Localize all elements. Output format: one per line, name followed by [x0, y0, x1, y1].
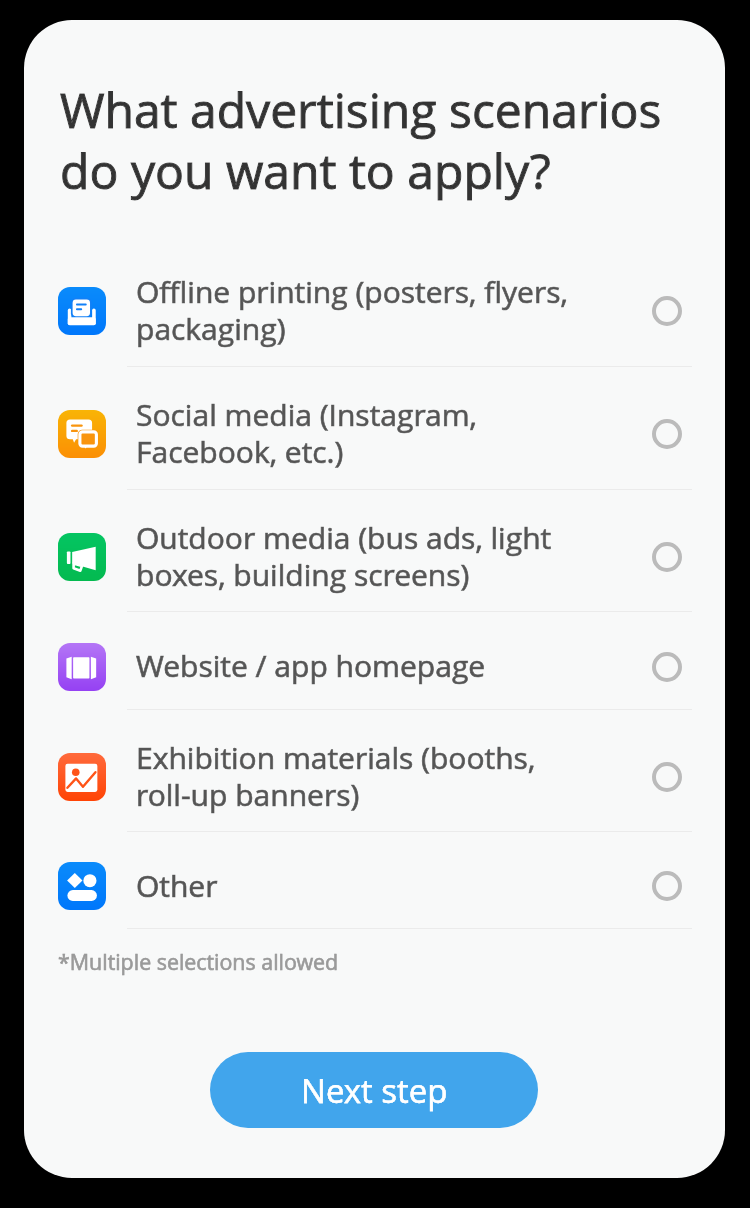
staticText: Social media (Instagram, Facebook, etc.): [136, 397, 477, 471]
button[interactable]: Select Exhibition materials: [645, 755, 689, 799]
button[interactable]: Select Website or app homepage: [645, 645, 689, 689]
staticText: What advertising scenarios do you want t…: [60, 80, 662, 202]
button[interactable]: Website or app homepage: [24, 612, 725, 710]
staticText: Outdoor media (bus ads, light boxes, bui…: [136, 520, 552, 594]
staticText: Social media (Instagram, Facebook, etc.): [136, 397, 477, 471]
staticText: Offline printing (posters, flyers, packa…: [136, 274, 568, 348]
staticText: *Multiple selections allowed: [58, 947, 339, 976]
button[interactable]: Exhibition materials: [24, 710, 725, 832]
staticText: Website / app homepage: [136, 648, 486, 685]
button[interactable]: Select Offline printing: [645, 289, 689, 333]
other: Social media: [58, 410, 106, 458]
other: Offline printing: [58, 287, 106, 335]
staticText: Other: [136, 868, 218, 905]
staticText: Website / app homepage: [136, 648, 486, 685]
button[interactable]: Other: [24, 832, 725, 929]
button[interactable]: Select Outdoor media: [645, 535, 689, 579]
button[interactable]: Next step: [210, 1052, 538, 1128]
other: Other: [58, 862, 106, 910]
staticText: Offline printing (posters, flyers, packa…: [136, 274, 568, 348]
staticText: Other: [136, 868, 218, 905]
staticText: *Multiple selections allowed: [58, 947, 339, 976]
other: Outdoor media: [58, 533, 106, 581]
other: Exhibition materials: [58, 753, 106, 801]
staticText: Next step: [301, 1068, 448, 1113]
staticText: Next step: [301, 1068, 448, 1113]
staticText: Exhibition materials (booths, roll-up ba…: [136, 740, 536, 814]
staticText: Exhibition materials (booths, roll-up ba…: [136, 740, 536, 814]
button[interactable]: Offline printing: [24, 244, 725, 367]
button[interactable]: Outdoor media: [24, 490, 725, 612]
button[interactable]: Select Social media: [645, 412, 689, 456]
other: Website or app homepage: [58, 643, 106, 691]
button[interactable]: Social media: [24, 367, 725, 490]
button[interactable]: Select Other: [645, 864, 689, 908]
staticText: Outdoor media (bus ads, light boxes, bui…: [136, 520, 552, 594]
staticText: What advertising scenarios do you want t…: [60, 80, 662, 202]
